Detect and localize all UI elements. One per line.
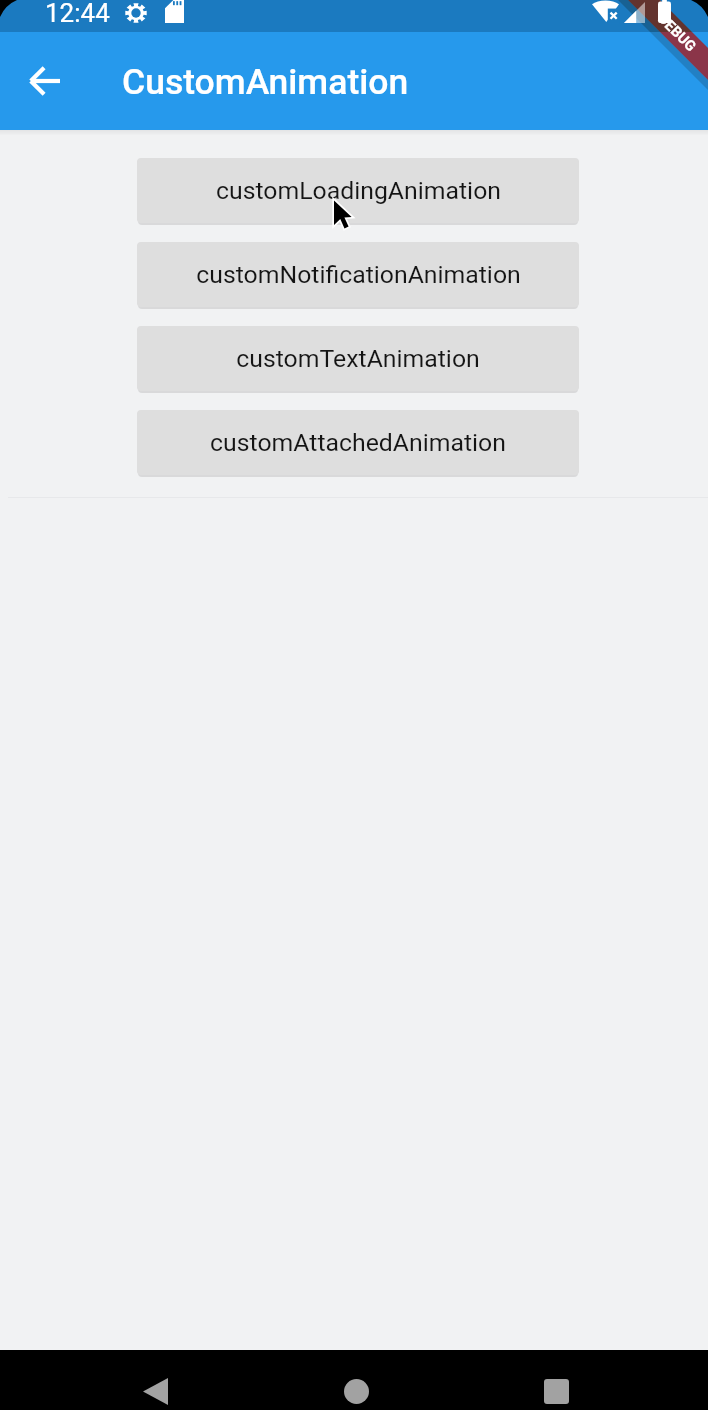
button[interactable]: customAttachedAnimation — [137, 410, 579, 475]
button[interactable]: customTextAnimation — [137, 326, 579, 391]
staticText: customLoadingAnimation — [216, 176, 501, 205]
button[interactable]: Home — [321, 1362, 392, 1410]
button[interactable]: customLoadingAnimation — [137, 158, 579, 223]
staticText: CustomAnimation — [122, 61, 409, 103]
button[interactable]: Navigate up — [15, 51, 75, 111]
staticText: customAttachedAnimation — [210, 428, 506, 457]
button[interactable]: Recent apps — [521, 1362, 592, 1410]
button[interactable]: customNotificationAnimation — [137, 242, 579, 307]
button[interactable]: Back — [120, 1362, 191, 1410]
staticText: customTextAnimation — [236, 344, 480, 373]
staticText: 12:44 — [45, 0, 110, 28]
staticText: customNotificationAnimation — [196, 260, 521, 289]
